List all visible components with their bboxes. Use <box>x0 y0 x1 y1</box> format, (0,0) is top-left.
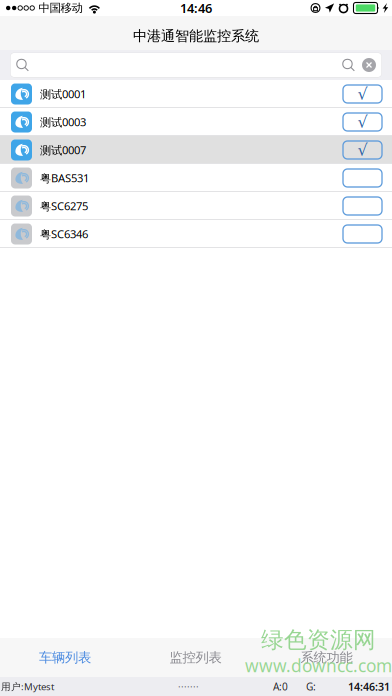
staticText: √ <box>357 113 367 131</box>
staticText: 测试0007 <box>40 142 86 158</box>
button[interactable]: Selected <box>343 85 382 103</box>
button[interactable]: 车辆列表 <box>0 638 130 677</box>
staticText: A:0 <box>273 680 288 693</box>
staticText: √ <box>357 141 367 159</box>
staticText: 系统功能 <box>300 649 352 666</box>
staticText: 粤BAS531 <box>40 170 89 186</box>
button[interactable]: 粤SC6346 <box>0 220 392 248</box>
staticText: 监控列表 <box>169 649 221 666</box>
staticText: G: <box>306 680 316 693</box>
button[interactable]: 粤BAS531 <box>0 164 392 192</box>
button[interactable]: 粤SC6275 <box>0 192 392 220</box>
staticText: www.downcc.com <box>245 654 392 677</box>
button[interactable]: 系统功能 <box>261 638 392 677</box>
button[interactable]: Select <box>343 197 382 215</box>
button[interactable]: 测试0007 <box>0 136 392 164</box>
staticText: 14:46 <box>180 0 212 17</box>
staticText: √ <box>357 85 367 103</box>
staticText: 14:46:31 <box>348 679 390 694</box>
button[interactable]: 测试0003 <box>0 108 392 136</box>
staticText: 车辆列表 <box>39 649 91 666</box>
staticText: 中国移动 <box>38 1 82 15</box>
button[interactable]: Select <box>343 169 382 187</box>
button[interactable]: Selected <box>343 141 382 159</box>
staticText: 用户:Mytest <box>1 680 54 693</box>
staticText: 测试0001 <box>40 86 86 102</box>
button[interactable]: Select <box>343 225 382 243</box>
staticText: 绿色资源网 <box>261 626 376 654</box>
staticText: 粤SC6275 <box>40 198 88 214</box>
staticText: 测试0003 <box>40 114 86 130</box>
staticText: 中港通智能监控系统 <box>133 27 259 45</box>
button[interactable]: 监控列表 <box>130 638 261 677</box>
button[interactable]: Selected <box>343 113 382 131</box>
button[interactable]: 测试0001 <box>0 80 392 108</box>
staticText: 粤SC6346 <box>40 226 88 242</box>
staticText: ······· <box>178 680 199 693</box>
